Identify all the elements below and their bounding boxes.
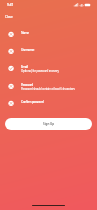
button[interactable]: Invalid [8, 30, 91, 44]
button[interactable]: Invalid [8, 99, 91, 113]
staticText: 9:41 [7, 3, 14, 7]
staticText: Name [21, 31, 29, 35]
other: Invalid [8, 30, 16, 38]
staticText: Email [21, 65, 28, 69]
button[interactable]: Close [3, 13, 15, 21]
button[interactable]: Valid [8, 64, 91, 78]
staticText: Close [5, 15, 13, 19]
staticText: Username [21, 48, 34, 52]
other: Invalid [8, 82, 16, 90]
staticText: Password [21, 83, 33, 87]
staticText: Sign Up [43, 122, 55, 126]
other: Invalid [8, 47, 16, 55]
staticText: Confirm password [21, 100, 44, 104]
button[interactable]: Invalid [8, 47, 91, 61]
button[interactable]: Sign Up [5, 118, 92, 130]
staticText: Optional, for password recovery [21, 69, 59, 73]
button[interactable]: Invalid [8, 82, 91, 96]
staticText: Password should contain at least 6 chara… [21, 87, 75, 91]
other: Invalid [8, 99, 16, 107]
other: Valid [8, 64, 16, 72]
